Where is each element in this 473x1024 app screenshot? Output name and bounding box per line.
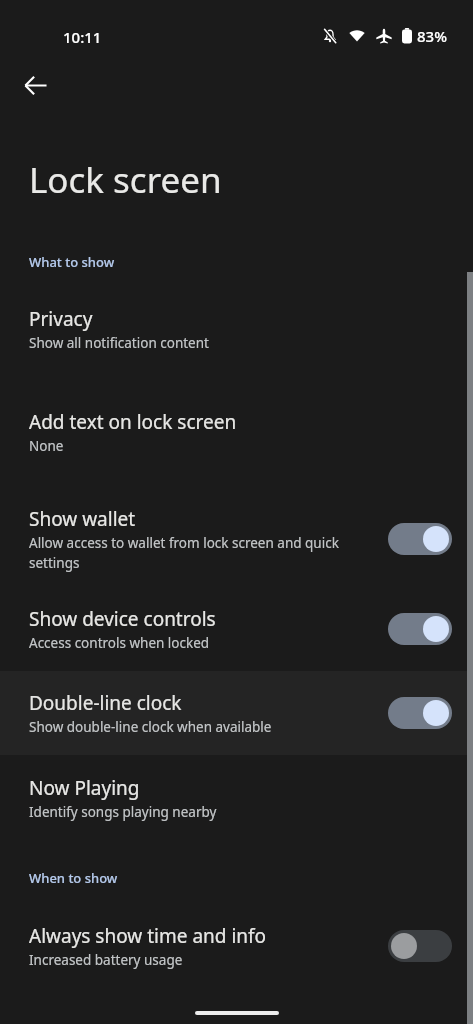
staticText: Show wallet: [29, 506, 136, 532]
button[interactable]: Show wallet: [0, 494, 473, 584]
staticText: Show all notification content: [29, 334, 209, 352]
staticText: Allow access to wallet from lock screen …: [29, 534, 374, 572]
button[interactable]: Show device controls: [0, 594, 473, 664]
staticText: Now Playing: [29, 775, 140, 801]
staticText: Identify songs playing nearby: [29, 803, 217, 821]
staticText: Increased battery usage: [29, 951, 183, 969]
staticText: Always show time and info: [29, 923, 267, 949]
staticText: Double-line clock: [29, 690, 182, 716]
staticText: When to show: [29, 869, 118, 887]
button[interactable]: Back: [12, 62, 58, 108]
staticText: Privacy: [29, 306, 93, 332]
staticText: Show double-line clock when available: [29, 718, 272, 736]
staticText: Add text on lock screen: [29, 409, 237, 435]
staticText: What to show: [29, 253, 115, 271]
button[interactable]: Now Playing: [0, 763, 473, 833]
button[interactable]: Toggle on: [388, 697, 452, 729]
staticText: Access controls when locked: [29, 634, 210, 652]
staticText: 10:11: [63, 27, 102, 47]
button[interactable]: Toggle off: [388, 930, 452, 962]
button[interactable]: Toggle on: [388, 523, 452, 555]
staticText: Show device controls: [29, 606, 216, 632]
staticText: None: [29, 437, 64, 455]
button[interactable]: Toggle on: [388, 613, 452, 645]
staticText: 83%: [417, 26, 447, 46]
button[interactable]: Add text on lock screen: [0, 397, 473, 467]
button[interactable]: Double-line clock: [0, 671, 473, 755]
button[interactable]: Privacy: [0, 294, 473, 364]
staticText: Lock screen: [29, 156, 222, 204]
button[interactable]: Always show time and info: [0, 911, 473, 981]
